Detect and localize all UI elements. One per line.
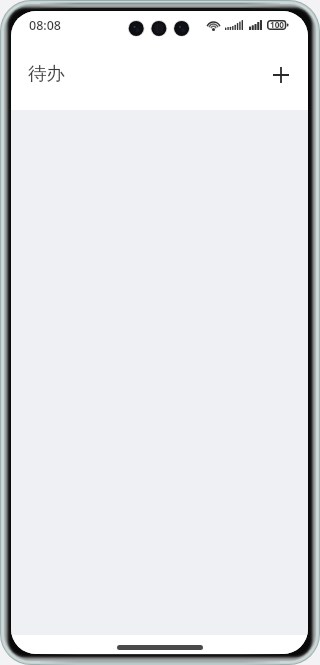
staticText: 08:08 [29, 17, 62, 34]
staticText: 待办 [28, 62, 65, 85]
staticText: 100 [270, 19, 285, 30]
button[interactable]: Add [263, 57, 299, 93]
